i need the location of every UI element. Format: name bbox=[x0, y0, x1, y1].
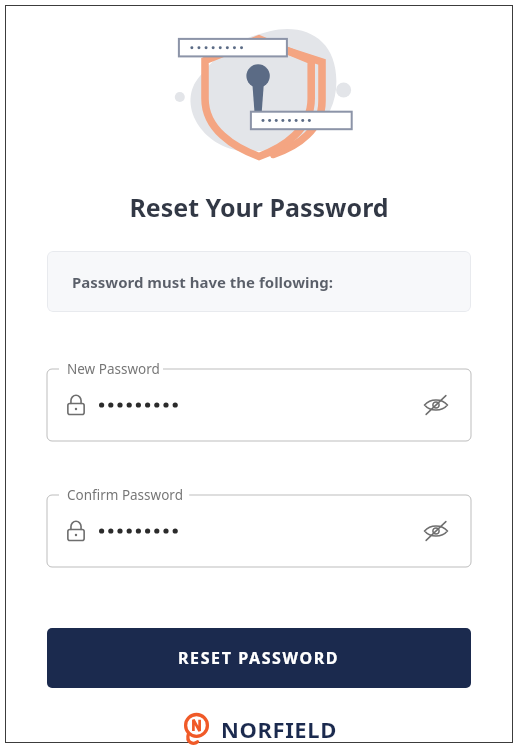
staticText: RESET PASSWORD bbox=[178, 647, 340, 669]
button[interactable]: Show password bbox=[419, 388, 453, 422]
button[interactable]: RESET PASSWORD bbox=[47, 628, 471, 688]
staticText: Password must have the following: bbox=[72, 272, 333, 292]
staticText: New Password bbox=[67, 360, 160, 378]
staticText: Reset Your Password bbox=[129, 190, 389, 224]
button[interactable]: NORFIELD bbox=[177, 709, 341, 748]
button[interactable]: Show password bbox=[419, 514, 453, 548]
staticText: Confirm Password bbox=[67, 486, 183, 504]
staticText: NORFIELD bbox=[221, 714, 337, 744]
